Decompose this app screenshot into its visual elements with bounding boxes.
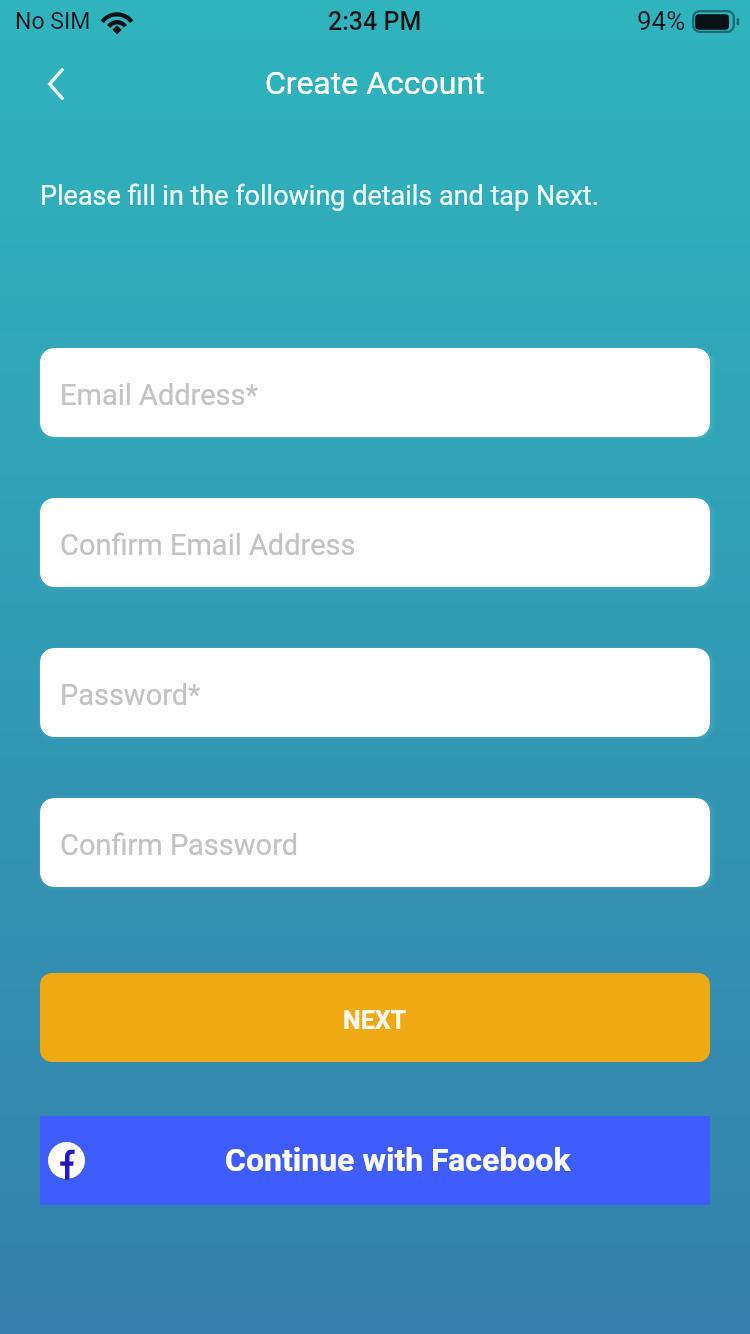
staticText: Email Address* bbox=[60, 378, 258, 412]
staticText: No SIM bbox=[15, 8, 91, 35]
staticText: Confirm Password bbox=[60, 828, 299, 862]
staticText: NEXT bbox=[343, 1006, 407, 1035]
staticText: Confirm Email Address bbox=[60, 528, 356, 562]
button[interactable]: Continue with Facebook bbox=[40, 1116, 710, 1205]
button[interactable]: Confirm Password bbox=[40, 798, 710, 887]
staticText: Create Account bbox=[265, 64, 485, 102]
staticText: Please fill in the following details and… bbox=[40, 180, 599, 212]
staticText: 94% bbox=[637, 6, 686, 36]
button[interactable]: Email Address* bbox=[40, 348, 710, 437]
button[interactable]: NEXT bbox=[40, 973, 710, 1062]
button[interactable]: Password* bbox=[40, 648, 710, 737]
button[interactable]: Confirm Email Address bbox=[40, 498, 710, 587]
staticText: Continue with Facebook bbox=[225, 1141, 571, 1179]
staticText: 2:34 PM bbox=[328, 7, 422, 36]
staticText: Password* bbox=[60, 678, 201, 712]
button[interactable]: Back bbox=[28, 56, 84, 112]
